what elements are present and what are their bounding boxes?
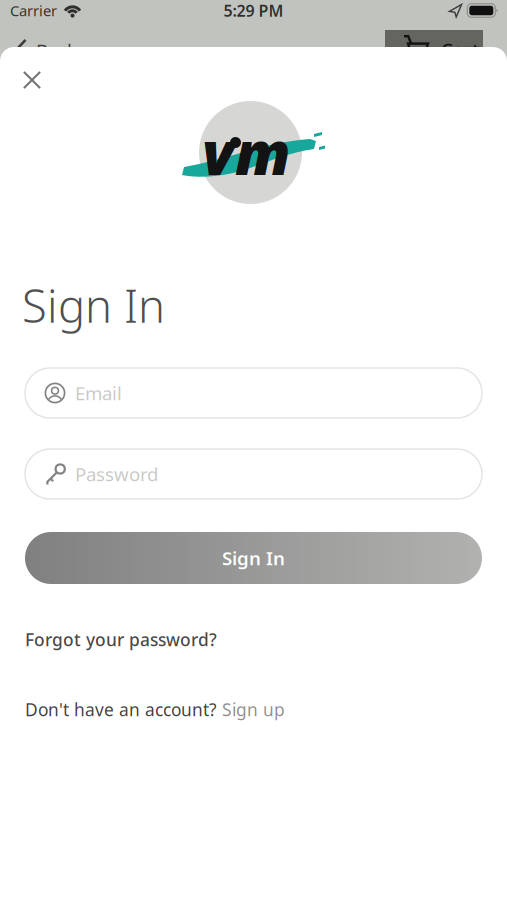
button[interactable]: Sign up bbox=[222, 698, 285, 721]
button[interactable]: Password bbox=[25, 449, 482, 499]
staticText: Forgot your password? bbox=[25, 628, 217, 651]
staticText: 5:29 PM bbox=[223, 0, 283, 21]
button[interactable]: Close bbox=[15, 63, 49, 97]
button[interactable]: Forgot your password? bbox=[25, 628, 217, 651]
staticText: Password bbox=[75, 462, 158, 486]
button[interactable]: Sign In bbox=[25, 532, 482, 584]
staticText: Sign In bbox=[22, 275, 165, 335]
staticText: Email bbox=[75, 381, 122, 405]
staticText: Sign In bbox=[222, 546, 285, 570]
button[interactable]: Cart bbox=[385, 30, 483, 64]
button[interactable]: Email bbox=[25, 368, 482, 418]
staticText: vm bbox=[202, 112, 291, 192]
staticText: Don't have an account? bbox=[25, 698, 217, 721]
staticText: Sign up bbox=[222, 698, 285, 721]
staticText: Carrier bbox=[10, 1, 57, 20]
button[interactable]: Back bbox=[0, 30, 77, 63]
staticText: Cart bbox=[441, 37, 479, 62]
staticText: Back bbox=[36, 38, 77, 63]
